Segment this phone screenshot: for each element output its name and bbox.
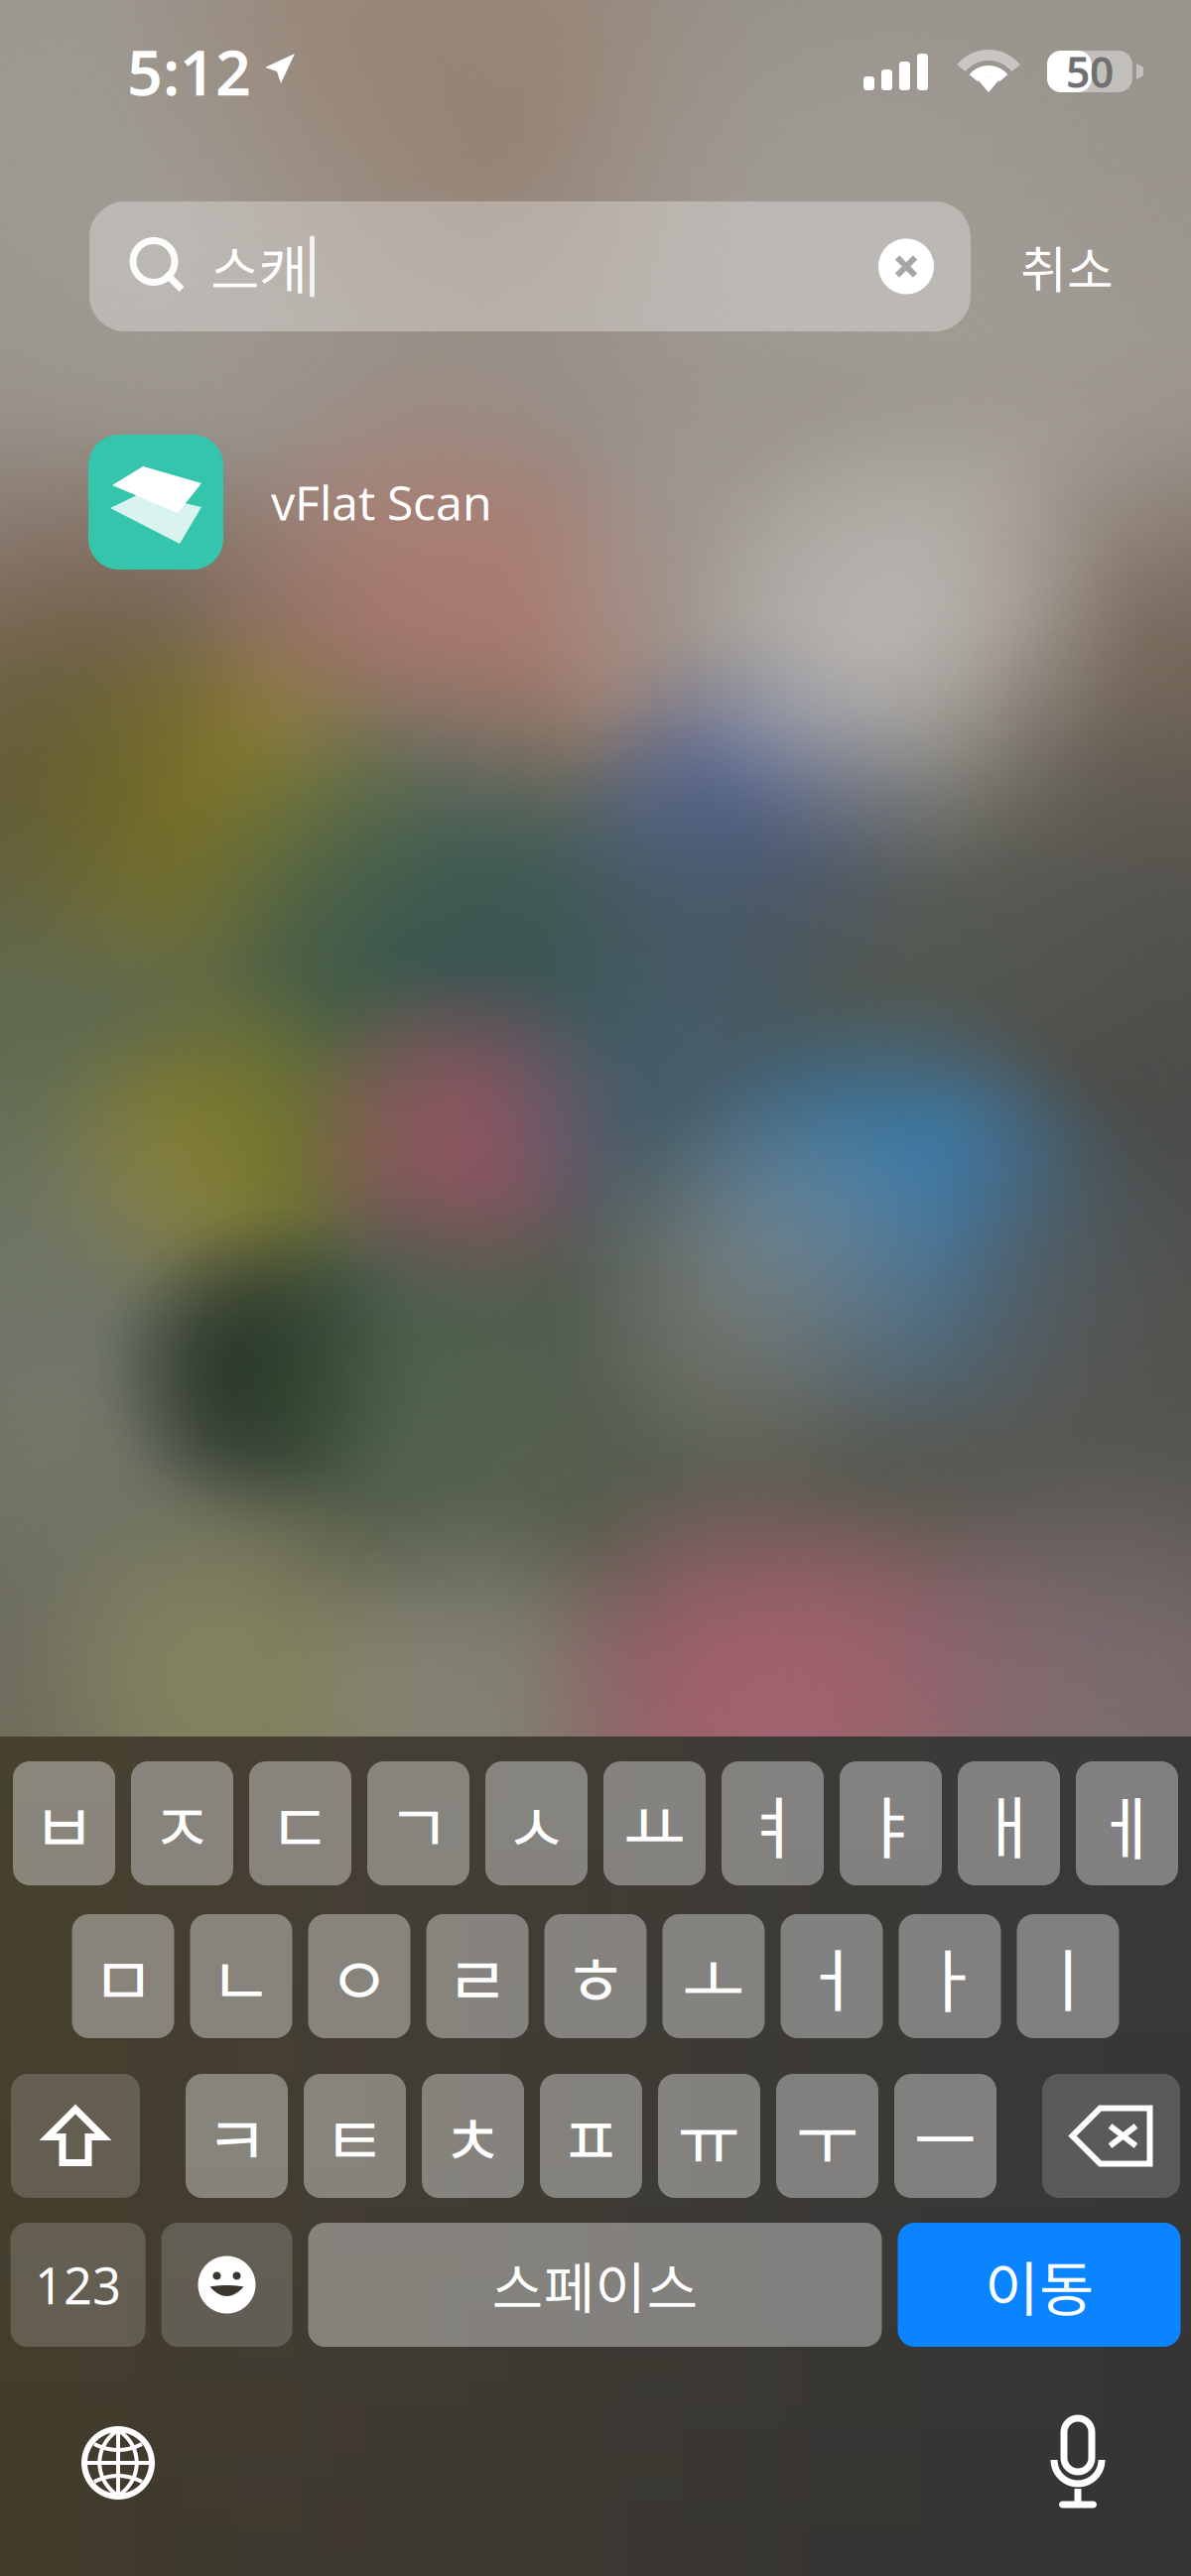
button[interactable]: ㅐ [958,1761,1060,1885]
staticText: ㅓ [800,1926,863,2026]
staticText: ㅜ [795,2086,859,2186]
button[interactable]: 취소 [1001,201,1132,331]
button[interactable]: ㅁ [72,1914,174,2038]
staticText: 스캐 [210,228,308,305]
staticText: ㅛ [623,1774,686,1873]
staticText: ㅁ [91,1926,155,2026]
staticText: ㅊ [441,2086,505,2186]
button[interactable]: ㅕ [722,1761,824,1885]
button[interactable]: ㅡ [894,2074,996,2198]
staticText: ㅋ [205,2086,268,2186]
button[interactable]: 스캐 [89,201,971,331]
staticText: 5:12 [127,30,251,113]
button[interactable]: ㄹ [426,1914,529,2038]
button[interactable]: ㅅ [485,1761,588,1885]
staticText: ㅈ [150,1774,214,1873]
staticText: ㅍ [559,2086,623,2186]
button[interactable]: ㅇ [308,1914,410,2038]
staticText: ㅇ [328,1926,391,2026]
staticText: ㅎ [564,1926,627,2026]
button[interactable]: 123 [10,2223,145,2347]
staticText: ㄷ [268,1774,332,1873]
button[interactable]: ㅓ [781,1914,883,2038]
staticText: ㅑ [859,1774,923,1873]
button[interactable]: ㅏ [899,1914,1001,2038]
staticText: ㅣ [1036,1926,1100,2026]
button[interactable]: ㅂ [13,1761,115,1885]
button[interactable]: ㄱ [367,1761,469,1885]
staticText: ㅡ [914,2086,977,2186]
button[interactable]: ㄷ [249,1761,351,1885]
staticText: ㄱ [387,1774,450,1873]
button[interactable]: ㅔ [1076,1761,1178,1885]
button[interactable]: 이동 [898,2223,1181,2347]
button[interactable]: ㅛ [603,1761,706,1885]
button[interactable]: Delete [1042,2074,1180,2198]
button[interactable]: ㅋ [186,2074,288,2198]
button[interactable]: ㅍ [540,2074,642,2198]
staticText: 123 [35,2251,121,2318]
staticText: ㅏ [918,1926,982,2026]
staticText: vFlat Scan [271,470,492,534]
button[interactable]: ㅊ [422,2074,524,2198]
staticText: ㅠ [677,2086,741,2186]
button[interactable]: ㅣ [1017,1914,1119,2038]
staticText: ㅗ [682,1926,745,2026]
staticText: 취소 [1020,230,1114,303]
staticText: ㅔ [1095,1774,1159,1873]
button[interactable]: ㅠ [658,2074,760,2198]
button[interactable]: ㅑ [840,1761,942,1885]
button[interactable]: ㅗ [662,1914,765,2038]
button[interactable]: Dictation [1038,2415,1118,2511]
button[interactable]: ㅎ [544,1914,647,2038]
button[interactable]: vFlat Scan [0,435,1191,570]
button[interactable]: Emoji keyboard [161,2223,292,2347]
staticText: ㅐ [977,1774,1041,1873]
button[interactable]: ㅈ [131,1761,233,1885]
staticText: ㄹ [446,1926,509,2026]
staticText: ㅕ [741,1774,804,1873]
staticText: ㅅ [505,1774,568,1873]
button[interactable]: Shift [11,2074,140,2198]
staticText: ㅌ [323,2086,387,2186]
button[interactable]: ㄴ [190,1914,292,2038]
staticText: ㅂ [32,1774,96,1873]
staticText: 50 [1066,43,1114,100]
staticText: ㄴ [209,1926,273,2026]
staticText: 이동 [985,2242,1094,2328]
button[interactable]: ㅜ [776,2074,878,2198]
button[interactable]: Next keyboard [70,2415,166,2511]
button[interactable]: ㅌ [304,2074,406,2198]
staticText: 스페이스 [492,2245,698,2325]
button[interactable]: 스페이스 [308,2223,882,2347]
